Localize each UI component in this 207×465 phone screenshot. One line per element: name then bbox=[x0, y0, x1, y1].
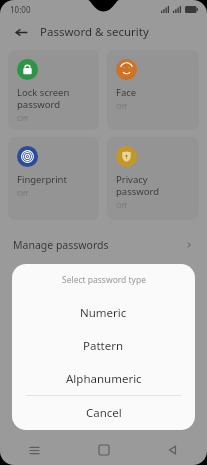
staticText: Off bbox=[116, 101, 128, 111]
staticText: Face bbox=[116, 86, 137, 99]
staticText: Fingerprint bbox=[17, 173, 67, 186]
button[interactable]: Privacy password bbox=[107, 137, 199, 220]
staticText: Pattern bbox=[83, 338, 124, 354]
staticText: Cancel bbox=[86, 405, 122, 421]
staticText: Alphanumeric bbox=[66, 371, 142, 387]
button[interactable]: Numeric bbox=[12, 296, 195, 329]
staticText: Select password type bbox=[62, 274, 146, 286]
staticText: Manage passwords bbox=[13, 238, 109, 252]
staticText: Privacy password bbox=[116, 173, 160, 198]
staticText: Lock screen password bbox=[17, 86, 70, 111]
button[interactable]: Back bbox=[10, 21, 32, 43]
staticText: Off bbox=[17, 188, 29, 198]
button[interactable]: Recent apps bbox=[0, 435, 69, 465]
staticText: Password & security bbox=[40, 24, 149, 40]
staticText: Off bbox=[17, 113, 29, 123]
staticText: 10:00 bbox=[10, 4, 31, 15]
button[interactable]: Back bbox=[138, 435, 207, 465]
staticText: Numeric bbox=[80, 305, 127, 321]
button[interactable]: Home bbox=[69, 435, 138, 465]
button[interactable]: Face bbox=[107, 50, 199, 130]
button[interactable]: Pattern bbox=[12, 329, 195, 362]
button[interactable]: Manage passwords bbox=[0, 232, 207, 258]
staticText: Off bbox=[116, 200, 128, 210]
button[interactable]: Lock screen password bbox=[8, 50, 99, 130]
button[interactable]: Cancel bbox=[12, 396, 195, 429]
button[interactable]: Alphanumeric bbox=[12, 362, 195, 395]
button[interactable]: Fingerprint bbox=[8, 137, 99, 220]
